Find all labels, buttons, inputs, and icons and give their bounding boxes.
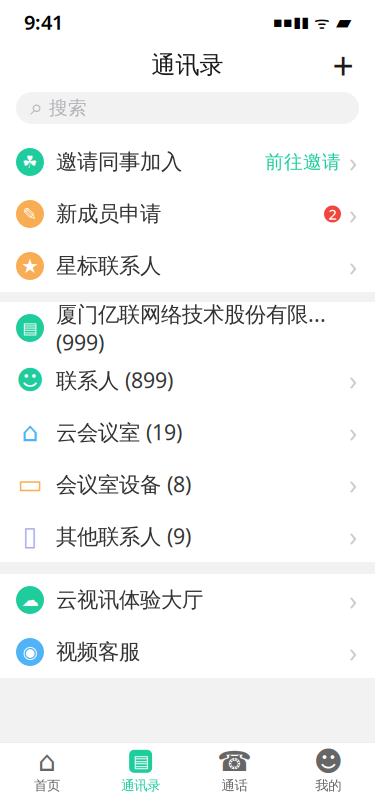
staticText: 通讯录 — [121, 777, 160, 794]
staticText: 9:41 — [24, 9, 63, 35]
staticText: › — [349, 248, 357, 284]
staticText: ᯤ — [309, 10, 330, 33]
staticText: ⌕ — [30, 97, 43, 119]
button[interactable]: ⌂ — [0, 741, 94, 794]
staticText: 首页 — [34, 777, 60, 794]
staticText: ☻ — [16, 365, 44, 395]
staticText: 云会议室 (19) — [56, 418, 182, 446]
staticText: › — [349, 144, 357, 180]
staticText: › — [349, 582, 357, 618]
staticText: ▭ — [17, 469, 42, 499]
staticText: ▪▪▮▮ — [273, 14, 309, 30]
staticText: › — [349, 414, 357, 450]
staticText: 新成员申请 — [56, 201, 161, 227]
button[interactable]: ⌕ — [16, 92, 359, 124]
staticText: 云视讯体验大厅 — [56, 587, 203, 613]
button[interactable]: ⌂ — [0, 406, 375, 458]
button[interactable]: ▤ — [0, 302, 375, 354]
staticText: ⌂ — [38, 745, 56, 777]
button[interactable]: ★ — [0, 240, 375, 292]
staticText: 我的 — [315, 777, 341, 794]
staticText: ◉ — [22, 642, 37, 662]
staticText: 通讯录 — [151, 50, 223, 80]
staticText: ☎ — [217, 745, 252, 777]
staticText: › — [349, 196, 357, 232]
staticText: ✎ — [22, 204, 37, 224]
staticText: 其他联系人 (9) — [56, 522, 191, 550]
staticText: 邀请同事加入 — [56, 149, 182, 175]
staticText: ☁ — [21, 590, 38, 610]
button[interactable]: ☻ — [0, 354, 375, 406]
staticText: › — [349, 518, 357, 554]
button[interactable]: ▯ — [0, 510, 375, 562]
staticText: + — [332, 40, 353, 90]
staticText: ☘ — [22, 152, 38, 172]
staticText: ▤ — [133, 751, 149, 771]
staticText: › — [349, 634, 357, 670]
button[interactable]: ✎ — [0, 188, 375, 240]
button[interactable]: ☘ — [0, 136, 375, 188]
staticText: ▰ — [330, 11, 351, 33]
staticText: 搜索 — [49, 96, 87, 119]
staticText: 通话 — [221, 777, 247, 794]
button[interactable]: ☻ — [281, 741, 375, 794]
staticText: ▯ — [22, 521, 37, 551]
staticText: › — [349, 362, 357, 398]
button[interactable]: ▭ — [0, 458, 375, 510]
staticText: 联系人 (899) — [56, 366, 173, 394]
staticText: ☻ — [314, 745, 343, 777]
staticText: › — [349, 466, 357, 502]
staticText: 前往邀请 — [265, 150, 341, 173]
staticText: ⌂ — [21, 417, 38, 447]
staticText: 2 — [328, 204, 336, 224]
button[interactable]: ◉ — [0, 626, 375, 678]
staticText: ▤ — [22, 319, 37, 337]
button[interactable]: Add contact — [321, 44, 365, 86]
staticText: 会议室设备 (8) — [56, 470, 191, 498]
button[interactable]: ☎ — [187, 741, 281, 794]
staticText: ★ — [21, 255, 39, 277]
staticText: 星标联系人 — [56, 253, 161, 279]
button[interactable]: ▤ — [94, 741, 188, 794]
staticText: 厦门亿联网络技术股份有限...(999) — [56, 300, 326, 356]
button[interactable]: ☁ — [0, 574, 375, 626]
staticText: 视频客服 — [56, 639, 140, 665]
